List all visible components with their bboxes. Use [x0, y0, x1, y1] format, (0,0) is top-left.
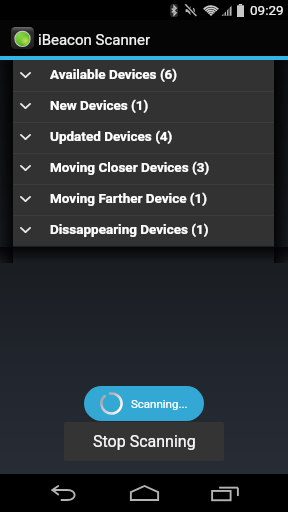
staticText: Dissappearing Devices (1)	[50, 221, 209, 237]
staticText: Scanning...	[131, 397, 188, 410]
button[interactable]: Updated Devices (4)	[13, 123, 274, 153]
button[interactable]: Scanning...	[84, 386, 204, 421]
button[interactable]: Back	[39, 474, 87, 512]
staticText: 09:29	[250, 2, 284, 18]
staticText: Moving Closer Devices (3)	[50, 159, 210, 175]
staticText: Available Devices (6)	[50, 66, 178, 82]
staticText: Moving Farther Device (1)	[50, 190, 208, 206]
button[interactable]: New Devices (1)	[13, 92, 274, 122]
button[interactable]: Moving Closer Devices (3)	[13, 154, 274, 184]
button[interactable]: Available Devices (6)	[13, 60, 274, 91]
button[interactable]: Recents	[201, 474, 249, 512]
staticText: Updated Devices (4)	[50, 128, 173, 144]
staticText: New Devices (1)	[50, 97, 149, 113]
button[interactable]: Moving Farther Device (1)	[13, 185, 274, 215]
button[interactable]: Stop Scanning	[64, 422, 224, 461]
staticText: Stop Scanning	[93, 432, 196, 451]
button[interactable]: Home	[120, 474, 168, 512]
button[interactable]: Dissappearing Devices (1)	[13, 216, 274, 246]
staticText: iBeacon Scanner	[38, 31, 151, 49]
